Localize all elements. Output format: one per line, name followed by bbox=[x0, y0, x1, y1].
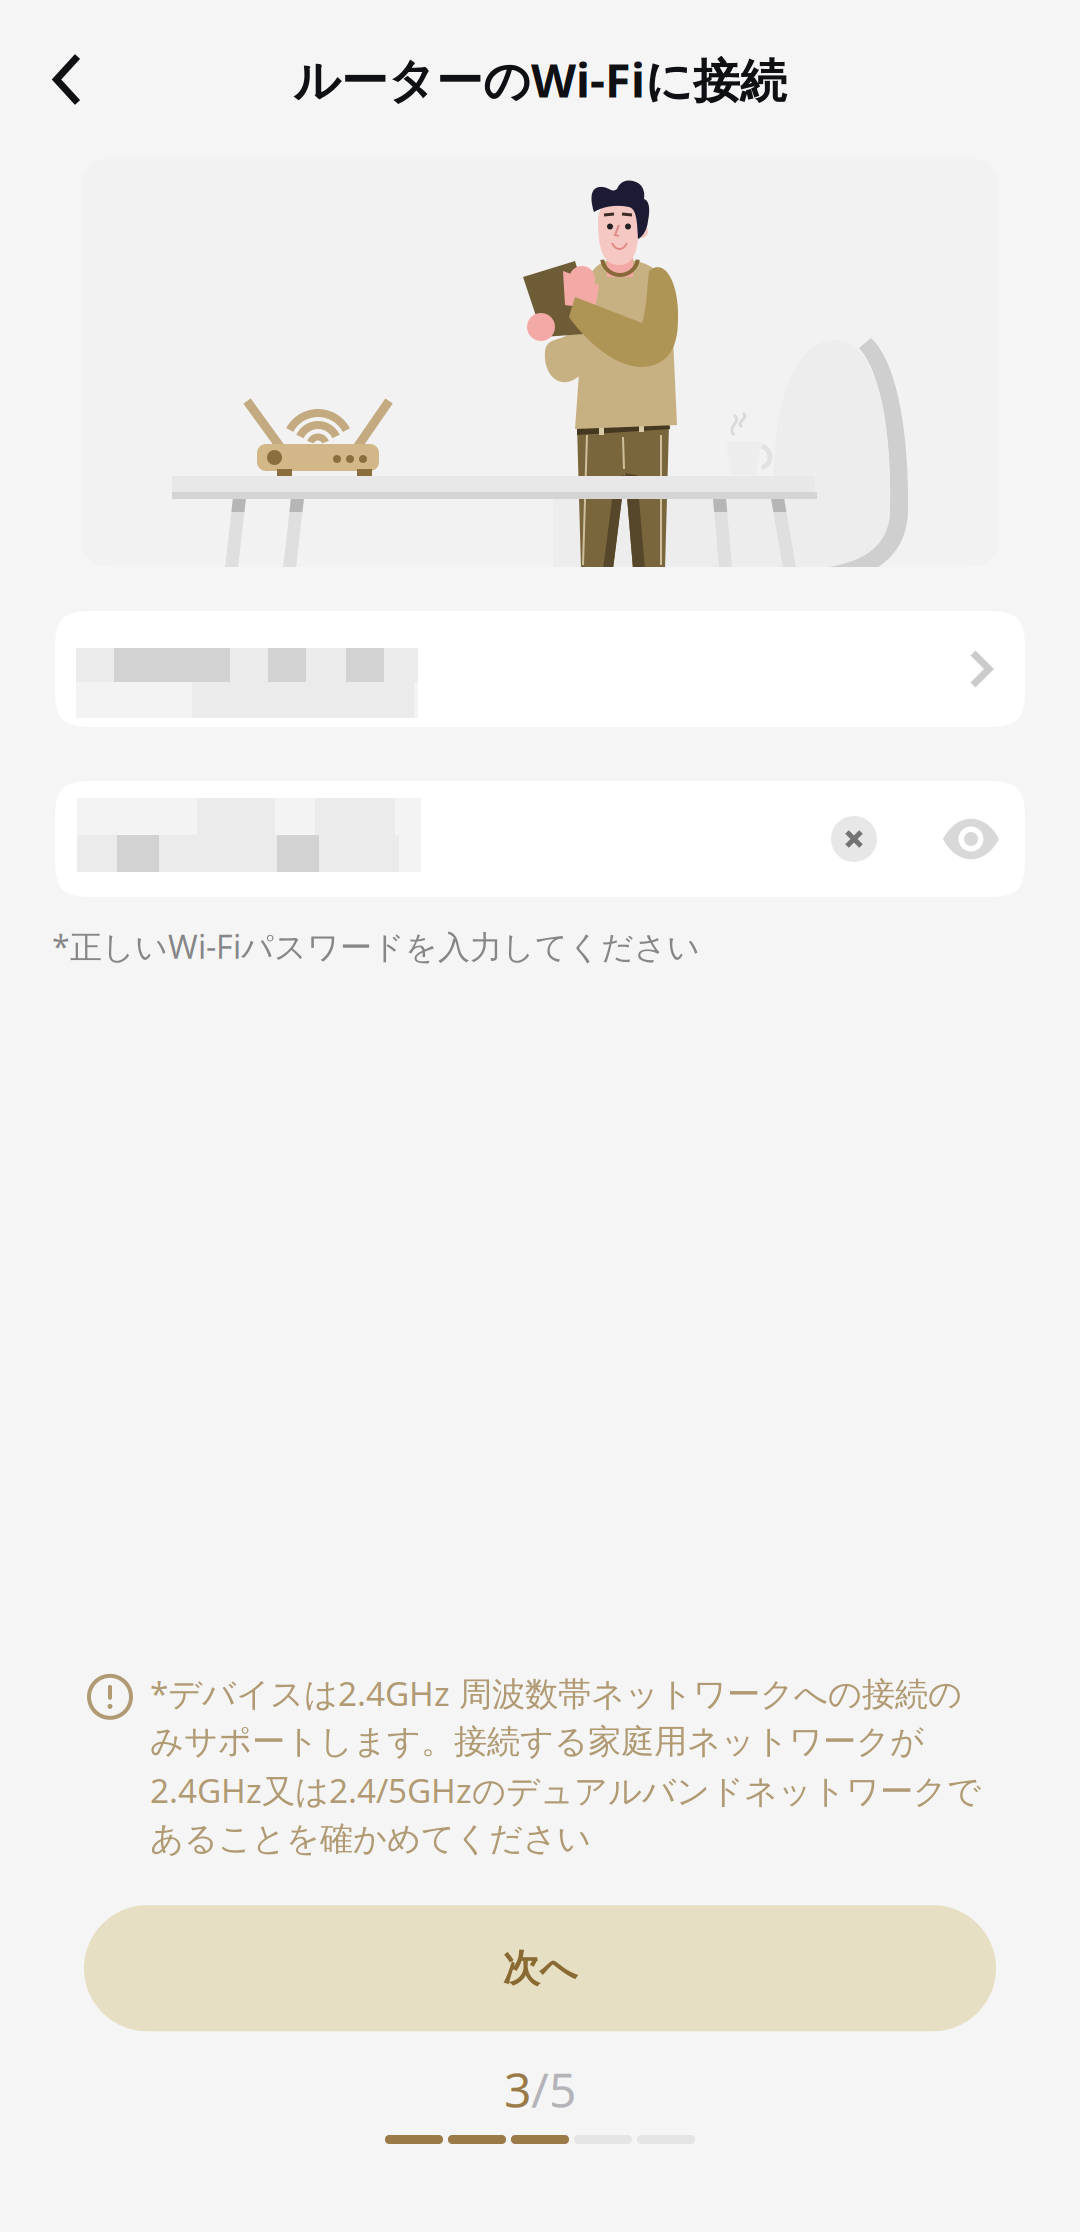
staticText: *デバイスは2.4GHz 周波数帯ネットワークへの接続のみサポートします。接続す… bbox=[150, 1671, 981, 1859]
staticText: ルーターのWi-Fiに接続 bbox=[293, 48, 787, 110]
staticText: *正しいWi-Fiパスワードを入力してください bbox=[52, 925, 700, 967]
button[interactable]: 消去 bbox=[831, 804, 877, 874]
button[interactable]: パスワードを表示 bbox=[929, 804, 1013, 874]
staticText: /5 bbox=[531, 2057, 576, 2121]
staticText: 次へ bbox=[502, 1945, 577, 1991]
button[interactable] bbox=[55, 611, 1025, 727]
button[interactable]: 次へ bbox=[84, 1905, 996, 2031]
staticText: 3 bbox=[504, 2057, 531, 2121]
button[interactable]: 戻る bbox=[27, 39, 107, 119]
